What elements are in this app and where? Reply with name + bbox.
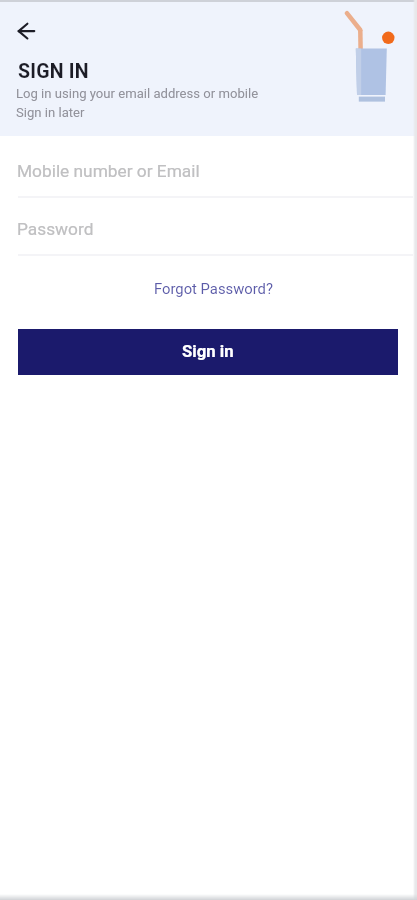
button[interactable]: Sign in — [18, 329, 398, 375]
staticText: Password — [17, 219, 94, 239]
staticText: SIGN IN — [18, 60, 89, 83]
button[interactable]: Forgot Password? — [144, 275, 283, 302]
staticText: Mobile number or Email — [17, 161, 200, 181]
staticText: Sign in — [182, 342, 234, 362]
staticText: Log in using your email address or mobil… — [16, 86, 259, 101]
button[interactable]: Back — [6, 9, 48, 51]
button[interactable]: Sign in later — [16, 105, 85, 120]
